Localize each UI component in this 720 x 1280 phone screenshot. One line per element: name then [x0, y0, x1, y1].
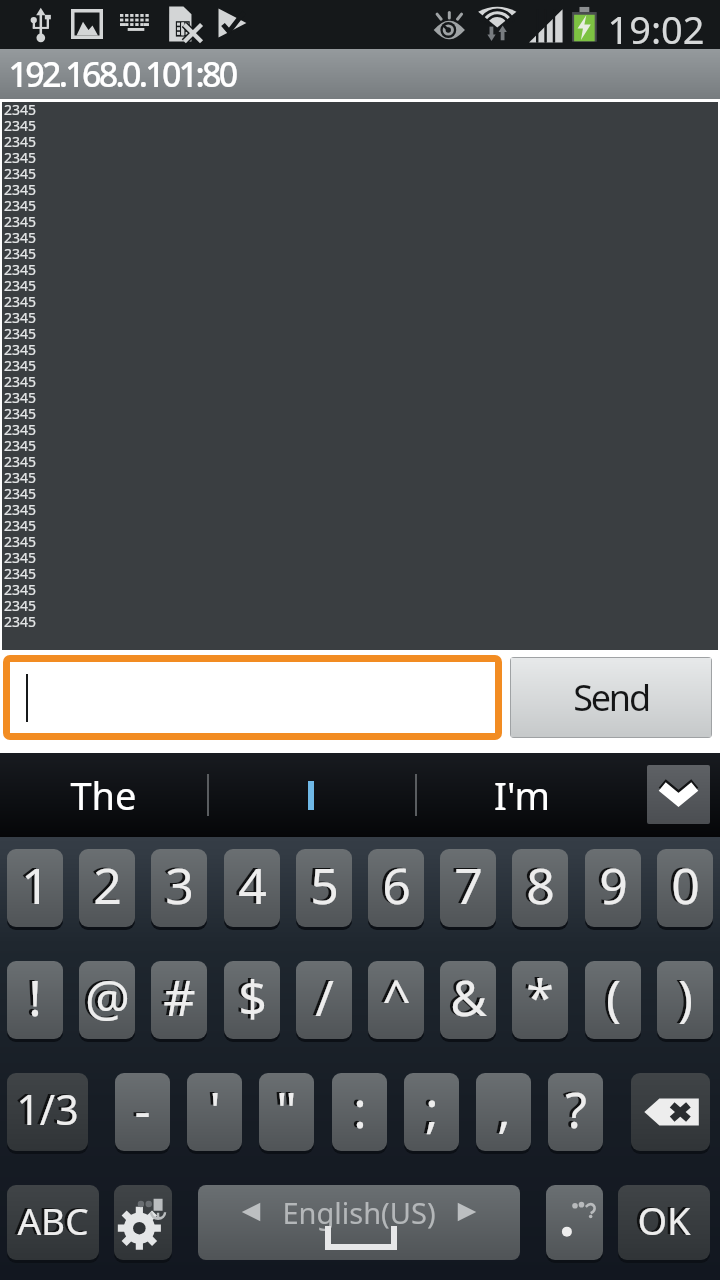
button[interactable]: ) [657, 961, 713, 1039]
staticText: / [312, 962, 331, 1030]
button[interactable]: I [208, 753, 415, 837]
button[interactable]: # [151, 961, 207, 1039]
staticText: 2345 [4, 436, 37, 452]
staticText: 2345 [4, 404, 37, 420]
button[interactable]: Settings [114, 1185, 172, 1260]
button[interactable]: I'm [417, 753, 627, 837]
button[interactable]: 1/3 [7, 1073, 88, 1151]
other: Settings [117, 1197, 169, 1249]
staticText: ABC [17, 1195, 89, 1245]
staticText: 1 [18, 850, 47, 918]
staticText: ! [25, 962, 39, 1030]
staticText: $ [238, 963, 267, 1031]
button[interactable]: 6 [368, 849, 424, 927]
staticText: 2345 [4, 516, 37, 532]
staticText: * [526, 963, 554, 1031]
staticText: 0 [668, 850, 697, 918]
staticText: 4 [235, 850, 264, 918]
staticText: 2345 [4, 228, 37, 244]
button[interactable]: 8 [512, 849, 568, 927]
button[interactable] [3, 655, 502, 740]
button[interactable]: / [296, 961, 352, 1039]
staticText: 2345 [4, 580, 37, 596]
staticText: , [494, 1074, 508, 1142]
button[interactable]: The [0, 753, 207, 837]
staticText: @ [82, 962, 127, 1030]
staticText: ' [209, 1075, 221, 1143]
staticText: ( [606, 963, 621, 1031]
staticText: 3 [165, 851, 194, 919]
button[interactable]: 4 [224, 849, 280, 927]
button[interactable]: ABC [7, 1185, 99, 1260]
staticText: & [450, 963, 487, 1031]
button[interactable]: ^ [368, 961, 424, 1039]
staticText: 6 [379, 850, 408, 918]
button[interactable]: ? [548, 1073, 603, 1151]
button[interactable]: 1 [7, 849, 63, 927]
staticText: 2345 [4, 164, 37, 180]
staticText: ? [562, 1074, 584, 1142]
button[interactable]: OK [618, 1185, 710, 1260]
staticText: 3 [162, 850, 191, 918]
staticText: 2345 [4, 356, 37, 372]
button[interactable]: ( [585, 961, 641, 1039]
staticText: 8 [523, 850, 552, 918]
staticText: 2345 [4, 132, 37, 148]
staticText: 2345 [4, 388, 37, 404]
button[interactable]: Backspace [631, 1073, 710, 1151]
button[interactable]: 3 [151, 849, 207, 927]
button[interactable]: * [512, 961, 568, 1039]
staticText: ) [675, 962, 690, 1030]
button[interactable]: " [259, 1073, 314, 1151]
staticText: 5 [307, 850, 336, 918]
staticText: 2345 [4, 324, 37, 340]
button[interactable]: Space, English(US) [198, 1185, 520, 1260]
button[interactable]: & [440, 961, 496, 1039]
staticText: 1/3 [13, 1080, 76, 1136]
staticText: 2345 [4, 260, 37, 276]
button[interactable]: : [332, 1073, 387, 1151]
staticText: # [163, 963, 196, 1031]
staticText: 19:02 [607, 3, 705, 52]
button[interactable]: ; [404, 1073, 459, 1151]
button[interactable]: - [115, 1073, 170, 1151]
staticText: 9 [596, 850, 625, 918]
button[interactable]: ! [7, 961, 63, 1039]
button[interactable]: $ [224, 961, 280, 1039]
staticText: OK [637, 1194, 691, 1246]
staticText: # [160, 962, 193, 1030]
staticText: @ [85, 963, 130, 1031]
staticText: Send [573, 673, 649, 722]
staticText: 2345 [4, 484, 37, 500]
staticText: 2345 [4, 308, 37, 324]
button[interactable]: ' [187, 1073, 242, 1151]
staticText: 2345 [4, 148, 37, 164]
button[interactable]: 5 [296, 849, 352, 927]
staticText: 2 [90, 850, 119, 918]
staticText: 5 [310, 851, 339, 919]
staticText: 2345 [4, 340, 37, 356]
staticText: 2345 [4, 500, 37, 516]
staticText: 2345 [4, 292, 37, 308]
button[interactable]: 0 [657, 849, 713, 927]
staticText: 4 [238, 851, 267, 919]
staticText: 2345 [4, 116, 37, 132]
button[interactable]: 2 [79, 849, 135, 927]
button[interactable]: Send [511, 658, 711, 737]
staticText: 2345 [4, 564, 37, 580]
staticText: $ [235, 962, 264, 1030]
staticText: & [447, 962, 484, 1030]
button[interactable]: @ [79, 961, 135, 1039]
staticText: 2345 [4, 532, 37, 548]
button[interactable]: Hide keyboard [647, 765, 710, 824]
staticText: 7 [454, 851, 483, 919]
staticText: 2345 [4, 420, 37, 436]
button[interactable]: 9 [585, 849, 641, 927]
staticText: 2345 [4, 468, 37, 484]
staticText: : [350, 1074, 364, 1142]
button[interactable] [546, 1185, 603, 1260]
staticText: 2345 [4, 372, 37, 388]
staticText: - [134, 1075, 151, 1143]
button[interactable]: 7 [440, 849, 496, 927]
button[interactable]: , [476, 1073, 531, 1151]
